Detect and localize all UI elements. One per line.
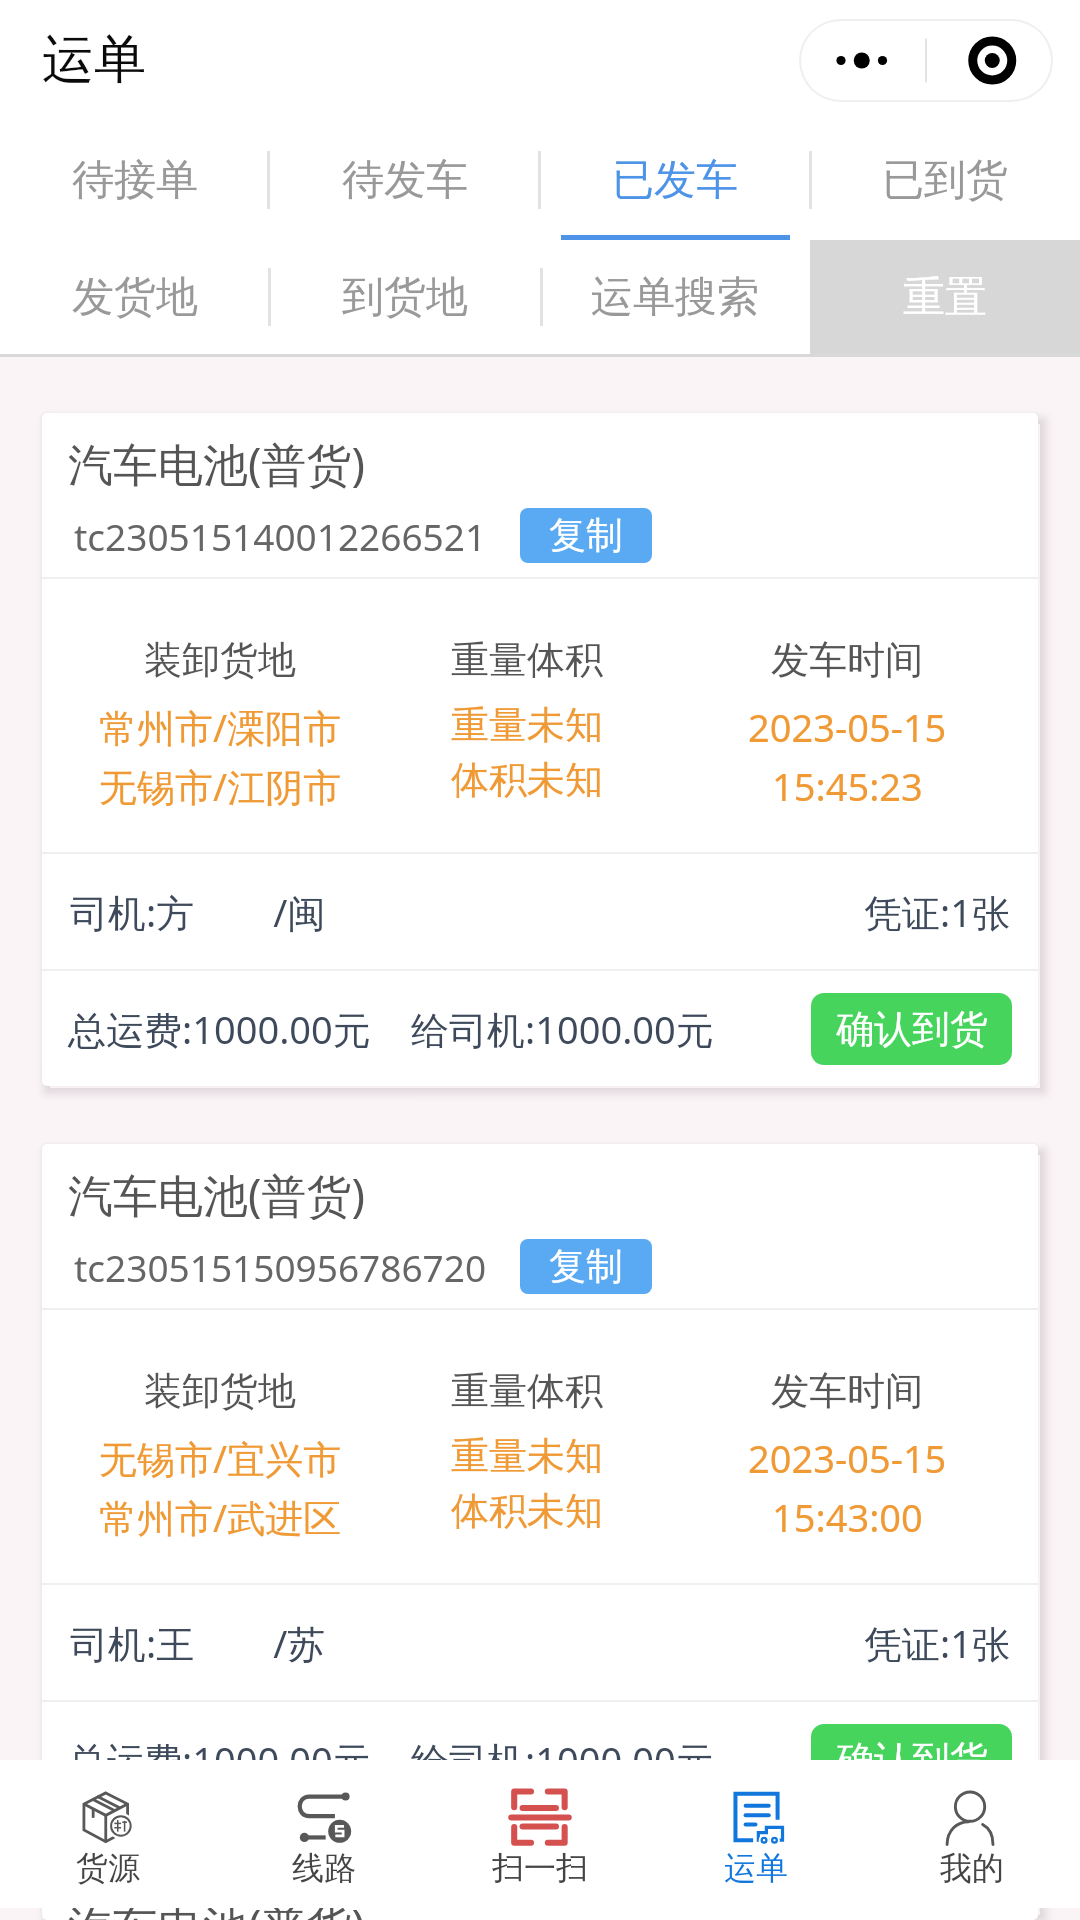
staticText: 体积未知 [451,1487,603,1535]
button[interactable]: 汽车电池(普货) [42,413,1038,1086]
staticText: 汽车电池(普货) [68,1895,366,1920]
staticText: 常州市/武进区 [99,1491,342,1543]
staticText: 运单 [42,27,146,93]
button[interactable]: 已到货 [810,120,1080,240]
staticText: 体积未知 [451,756,603,804]
button[interactable]: 运单 [648,1760,864,1908]
staticText: 凭证:1张 [864,1617,1010,1669]
button[interactable]: 待发车 [270,120,540,240]
staticText: 重量体积 [451,1367,603,1415]
staticText: 汽车电池(普货) [68,433,366,494]
staticText: 重置 [903,271,987,324]
staticText: 确认到货 [836,1736,988,1784]
staticText: 我的 [940,1848,1004,1888]
staticText: 扫一扫 [492,1848,588,1888]
staticText: 给司机:1000.00元 [411,1734,714,1786]
staticText: 常州市/溧阳市 [99,701,342,753]
button[interactable]: 货源 [0,1760,216,1908]
staticText: 给司机:1000.00元 [411,1003,714,1055]
staticText: 确认到货 [836,1005,988,1053]
staticText: 待接单 [72,154,198,207]
staticText: 装卸货地 [144,636,296,684]
staticText: 司机:王 /苏 [70,1617,326,1669]
staticText: 发车时间 [771,1367,923,1415]
button[interactable]: 线路 [216,1760,432,1908]
staticText: 发货地 [72,271,198,324]
staticText: 重量未知 [451,1432,603,1480]
staticText: 已到货 [882,154,1008,207]
staticText: 2023-05-15 [748,701,947,753]
staticText: 15:45:23 [772,760,923,812]
staticText: 复制 [549,1243,623,1290]
button[interactable]: 重置 [810,240,1080,354]
staticText: 凭证:1张 [864,886,1010,938]
button[interactable]: 运单搜索 [540,240,810,354]
button[interactable]: 汽车电池(普货) [42,1875,1038,1920]
staticText: 重量未知 [451,701,603,749]
button[interactable]: 待接单 [0,120,270,240]
staticText: 汽车电池(普货) [68,1164,366,1225]
button[interactable]: 复制 [520,508,652,563]
button[interactable]: 到货地 [270,240,540,354]
button[interactable]: More options and close [801,21,1051,100]
staticText: 15:43:00 [772,1491,923,1543]
staticText: 总运费:1000.00元 [68,1003,371,1055]
button[interactable]: 确认到货 [811,993,1012,1065]
staticText: 无锡市/宜兴市 [99,1432,342,1484]
staticText: 货源 [76,1848,140,1888]
button[interactable]: 已发车 [540,120,810,240]
staticText: 复制 [549,512,623,559]
button[interactable]: 汽车电池(普货) [42,1144,1038,1817]
staticText: 发车时间 [771,636,923,684]
staticText: 2023-05-15 [748,1432,947,1484]
staticText: 无锡市/江阴市 [99,760,342,812]
button[interactable]: 我的 [864,1760,1080,1908]
button[interactable]: 扫一扫 [432,1760,648,1908]
button[interactable]: 确认到货 [811,1724,1012,1796]
button[interactable]: 发货地 [0,240,270,354]
staticText: 线路 [292,1848,356,1888]
staticText: 运单搜索 [591,271,759,324]
staticText: 到货地 [342,271,468,324]
staticText: tc230515140012266521 [74,511,487,561]
staticText: 总运费:1000.00元 [68,1734,371,1786]
staticText: 司机:方 /闽 [70,886,326,938]
other: More options and close [801,21,1051,100]
staticText: 已发车 [612,154,738,207]
button[interactable]: 复制 [520,1239,652,1294]
staticText: 运单 [724,1848,788,1888]
staticText: 待发车 [342,154,468,207]
staticText: 重量体积 [451,636,603,684]
staticText: tc230515150956786720 [74,1242,487,1292]
staticText: 装卸货地 [144,1367,296,1415]
